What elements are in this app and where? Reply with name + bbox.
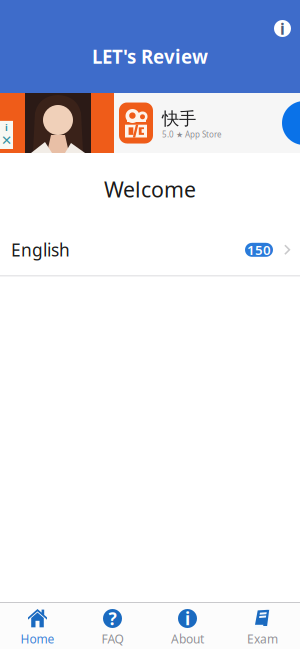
button[interactable]: English bbox=[0, 227, 300, 275]
staticText: English bbox=[11, 238, 70, 261]
staticText: i bbox=[280, 18, 285, 39]
staticText: Exam bbox=[247, 631, 278, 647]
staticText: Home bbox=[20, 631, 54, 647]
button[interactable]: Information bbox=[267, 13, 298, 44]
staticText: 快手 bbox=[162, 108, 196, 129]
staticText: i bbox=[185, 607, 190, 630]
button[interactable]: i bbox=[150, 603, 225, 649]
staticText: LET's Review bbox=[92, 44, 208, 69]
staticText: 5.0 ★ App Store bbox=[162, 129, 222, 140]
staticText: FAQ bbox=[101, 631, 123, 647]
staticText: About bbox=[171, 631, 204, 647]
staticText: ? bbox=[108, 607, 116, 630]
button[interactable]: Exam bbox=[225, 603, 300, 649]
staticText: 150 bbox=[247, 241, 271, 259]
button[interactable]: ? bbox=[75, 603, 150, 649]
button[interactable]: Home bbox=[0, 603, 75, 649]
staticText: Welcome bbox=[104, 175, 196, 203]
staticText: i bbox=[5, 121, 8, 134]
staticText: ✕ bbox=[1, 133, 12, 148]
